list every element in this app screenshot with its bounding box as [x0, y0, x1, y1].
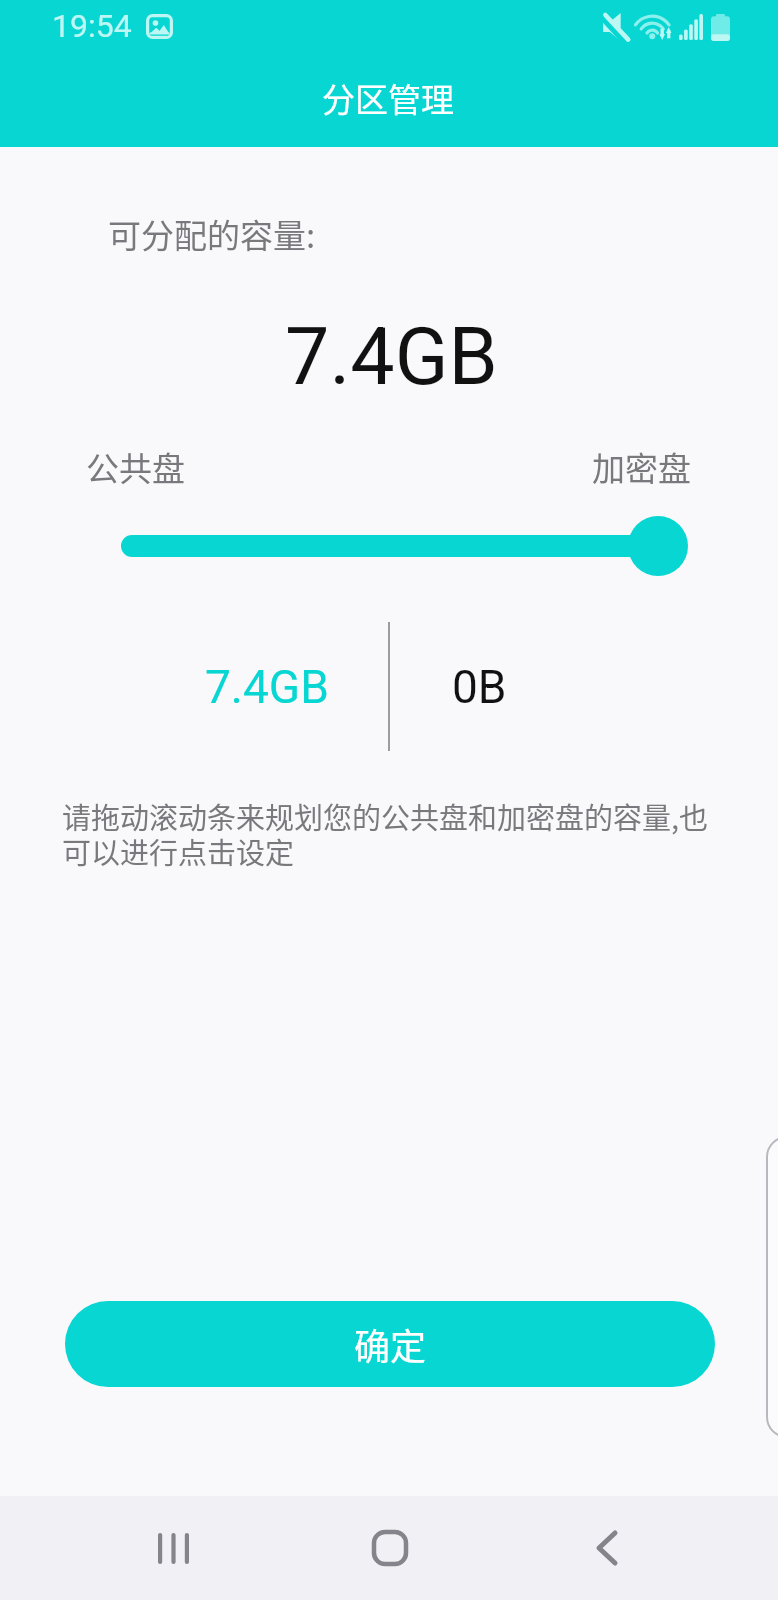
staticText: 可分配的容量: [108, 210, 316, 258]
staticText: 19:54 [52, 7, 132, 45]
staticText: 7.4GB [205, 660, 329, 714]
button[interactable]: Recent apps [115, 1496, 231, 1600]
staticText: 0B [452, 660, 507, 714]
button[interactable]: Home [332, 1496, 448, 1600]
staticText: 公共盘 [86, 443, 185, 491]
button[interactable]: Back [549, 1496, 665, 1600]
button[interactable]: Partition size slider [0, 512, 778, 580]
staticText: 分区管理 [322, 74, 454, 122]
staticText: 确定 [354, 1318, 427, 1370]
staticText: 7.4GB [285, 311, 498, 404]
button[interactable]: 确定 [65, 1301, 715, 1387]
staticText: 加密盘 [592, 443, 691, 491]
staticText: 请拖动滚动条来规划您的公共盘和加密盘的容量,也可以进行点击设定 [62, 795, 722, 872]
